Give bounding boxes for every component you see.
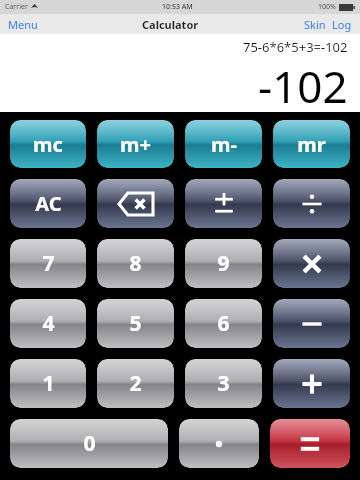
button[interactable]: Multiply — [273, 239, 350, 288]
staticText: mc — [33, 131, 63, 158]
staticText: m+ — [120, 131, 151, 158]
button[interactable]: mc — [10, 120, 86, 168]
button[interactable]: Equals — [270, 419, 350, 468]
staticText: 75-6*6*5+3=-102 — [243, 38, 348, 56]
staticText: 4 — [42, 309, 55, 338]
button[interactable]: AC — [10, 179, 86, 228]
staticText: Log — [332, 17, 352, 32]
button[interactable]: Plus — [273, 359, 350, 408]
staticText: m- — [211, 131, 237, 158]
button[interactable]: 7 — [10, 239, 86, 288]
button[interactable]: m- — [185, 120, 262, 168]
staticText: Menu — [8, 17, 38, 32]
button[interactable]: 5 — [97, 299, 174, 348]
staticText: 5 — [129, 309, 142, 338]
staticText: 2 — [129, 369, 142, 398]
button[interactable]: Backspace — [97, 179, 174, 228]
staticText: 9 — [217, 249, 230, 278]
button[interactable]: Plus minus — [185, 179, 262, 228]
staticText: 10:53 AM — [162, 2, 193, 12]
staticText: 3 — [217, 369, 230, 398]
staticText: 6 — [217, 309, 230, 338]
button[interactable]: Decimal point — [179, 419, 259, 468]
button[interactable]: mr — [273, 120, 350, 168]
staticText: -102 — [258, 56, 348, 112]
button[interactable]: 8 — [97, 239, 174, 288]
staticText: Calculator — [142, 17, 199, 32]
button[interactable]: Menu — [8, 17, 38, 32]
staticText: Skin — [304, 17, 326, 32]
staticText: 8 — [129, 249, 142, 278]
staticText: AC — [35, 190, 62, 217]
staticText: 7 — [42, 249, 55, 278]
button[interactable]: 2 — [97, 359, 174, 408]
button[interactable]: 0 — [10, 419, 168, 468]
button[interactable]: m+ — [97, 120, 174, 168]
button[interactable]: Skin — [304, 17, 326, 32]
staticText: mr — [297, 131, 326, 158]
button[interactable]: 75-6*6*5+3=-102 — [0, 34, 360, 112]
staticText: 100% — [318, 2, 336, 12]
button[interactable]: 4 — [10, 299, 86, 348]
button[interactable]: 1 — [10, 359, 86, 408]
button[interactable]: 6 — [185, 299, 262, 348]
button[interactable]: Log — [332, 17, 352, 32]
button[interactable]: 3 — [185, 359, 262, 408]
staticText: 1 — [42, 369, 55, 398]
button[interactable]: Divide — [273, 179, 350, 228]
staticText: 0 — [83, 429, 96, 458]
button[interactable]: Minus — [273, 299, 350, 348]
button[interactable]: 9 — [185, 239, 262, 288]
staticText: Carrier — [5, 2, 28, 12]
